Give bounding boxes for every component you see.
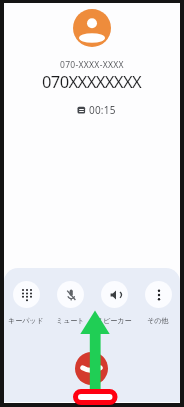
button[interactable] xyxy=(75,352,108,385)
staticText: 00:15 xyxy=(89,103,116,117)
staticText: 070XXXXXXXX xyxy=(42,70,142,92)
button[interactable]: ミュート xyxy=(48,281,92,325)
button[interactable]: キーパッド xyxy=(4,281,48,325)
button[interactable]: スピーカー xyxy=(92,281,136,325)
staticText: 070-XXXX-XXXX xyxy=(60,59,124,71)
staticText: スピーカー xyxy=(96,316,132,325)
staticText: その他 xyxy=(147,316,169,325)
staticText: キーパッド xyxy=(8,316,44,325)
button[interactable]: その他 xyxy=(136,281,180,325)
staticText: ミュート xyxy=(56,316,85,325)
